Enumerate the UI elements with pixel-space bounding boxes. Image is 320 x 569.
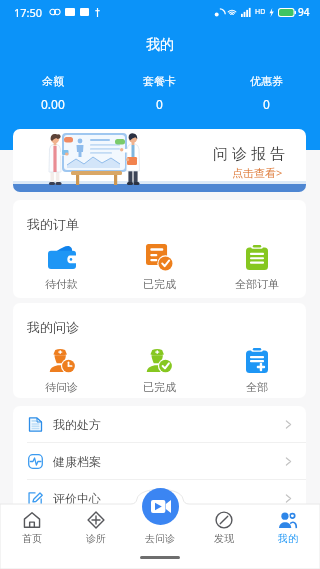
staticText: 诊所: [86, 532, 106, 545]
staticText: HD: [255, 7, 266, 17]
button[interactable]: 优惠券: [213, 74, 320, 112]
button[interactable]: 全部订单: [208, 243, 306, 291]
staticText: 全部: [246, 380, 268, 394]
staticText: 评价中心: [53, 491, 101, 506]
staticText: 我的问诊: [27, 319, 79, 335]
staticText: 发现: [214, 532, 234, 545]
staticText: 我的处方: [53, 417, 101, 432]
staticText: 待付款: [45, 277, 78, 291]
button[interactable]: 全部: [208, 346, 306, 394]
button[interactable]: 评价中心: [13, 480, 306, 516]
staticText: 0: [263, 96, 270, 112]
button[interactable]: 发现: [192, 507, 256, 545]
staticText: 首页: [22, 532, 42, 545]
staticText: 余额: [42, 74, 64, 88]
button[interactable]: 套餐卡: [106, 74, 213, 112]
button[interactable]: 问诊报告: [13, 129, 306, 192]
staticText: 套餐卡: [143, 74, 176, 88]
button[interactable]: 首页: [0, 507, 64, 545]
button[interactable]: 余额: [0, 74, 106, 112]
staticText: 0.00: [41, 96, 65, 112]
button[interactable]: 我的处方: [13, 406, 306, 442]
staticText: 0: [156, 96, 163, 112]
button[interactable]: 健康档案: [13, 443, 306, 479]
button[interactable]: 去问诊: [142, 488, 179, 525]
staticText: 点击查看>: [232, 165, 283, 180]
staticText: 17:50: [14, 5, 43, 20]
staticText: 优惠券: [250, 74, 283, 88]
button[interactable]: 已完成: [110, 346, 208, 394]
staticText: 健康档案: [53, 454, 101, 469]
staticText: 94: [298, 5, 310, 19]
staticText: 我的订单: [27, 216, 79, 232]
staticText: 已完成: [143, 380, 176, 394]
staticText: 问诊报告: [211, 145, 287, 164]
staticText: 我的: [278, 532, 298, 545]
staticText: 去问诊: [145, 532, 175, 545]
button[interactable]: 诊所: [64, 507, 128, 545]
button[interactable]: 我的: [256, 507, 320, 545]
staticText: 我的: [0, 36, 320, 54]
button[interactable]: 待问诊: [13, 346, 110, 394]
button[interactable]: 去问诊: [128, 507, 192, 545]
staticText: 待问诊: [45, 380, 78, 394]
staticText: 已完成: [143, 277, 176, 291]
button[interactable]: 已完成: [110, 243, 208, 291]
button[interactable]: 待付款: [13, 243, 110, 291]
staticText: 全部订单: [235, 277, 279, 291]
